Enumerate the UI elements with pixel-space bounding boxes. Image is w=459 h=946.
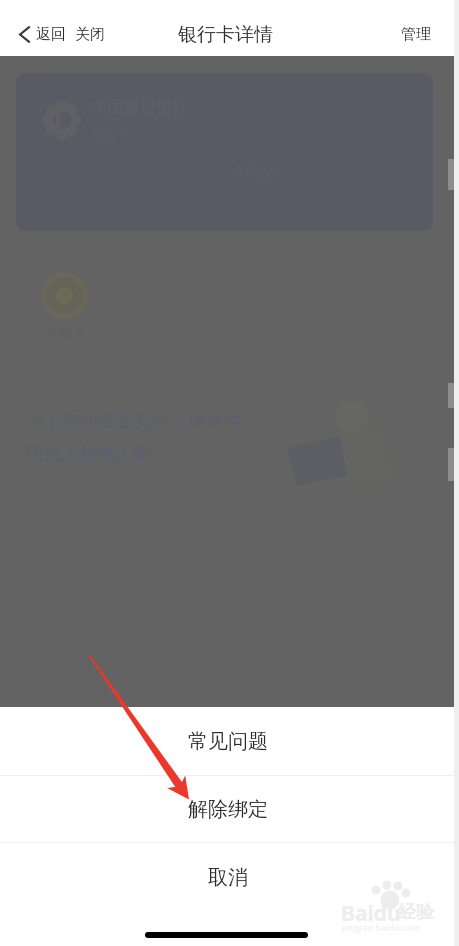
staticText: 解除绑定 [188, 797, 268, 822]
staticText: 取消 [208, 865, 248, 890]
button[interactable]: 取消 [0, 843, 459, 915]
staticText: 关闭 [75, 25, 105, 44]
staticText: jingyan.baidu.com [342, 921, 420, 933]
staticText: 常见问题 [188, 729, 268, 754]
staticText: 陌生人转账汇款 [26, 442, 152, 465]
button[interactable]: 解除绑定 [0, 776, 459, 842]
staticText: 返回 [36, 25, 66, 44]
button[interactable]: 返回 [17, 25, 68, 44]
staticText: 经验 [398, 901, 434, 924]
staticText: Baidu [341, 899, 401, 928]
staticText: 管理 [401, 25, 431, 44]
staticText: 银行卡详情 [178, 23, 273, 47]
button[interactable]: 关闭 [73, 25, 107, 44]
staticText: 为了您的资金安全，请勿向 [26, 410, 242, 433]
button[interactable]: 管理 [391, 25, 459, 44]
button[interactable]: 常见问题 [0, 707, 459, 775]
